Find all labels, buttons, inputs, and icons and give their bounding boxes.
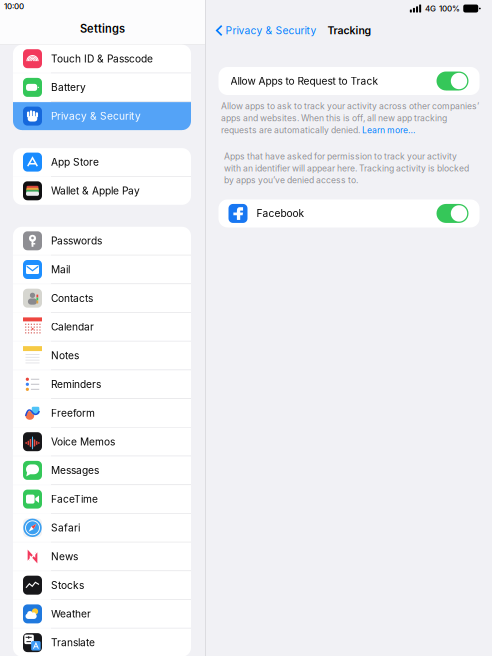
button[interactable]: Toggle: [436, 204, 468, 223]
staticText: Voice Memos: [51, 436, 115, 448]
staticText: Calendar: [51, 321, 94, 333]
button[interactable]: Voice Memos: [13, 428, 191, 456]
button[interactable]: Contacts: [13, 284, 191, 312]
button[interactable]: Touch ID & Passcode: [13, 45, 191, 73]
staticText: Freeform: [51, 407, 95, 419]
button[interactable]: Privacy & Security: [13, 102, 191, 130]
staticText: with an identifier will appear here. Tra…: [224, 163, 469, 173]
staticText: App Store: [51, 156, 99, 168]
button[interactable]: Wallet & Apple Pay: [13, 177, 191, 205]
staticText: Translate: [51, 636, 95, 649]
staticText: by apps you’ve denied access to.: [224, 175, 358, 185]
staticText: Passwords: [51, 235, 102, 247]
staticText: Wallet & Apple Pay: [51, 185, 140, 197]
staticText: Privacy & Security: [225, 24, 316, 37]
staticText: apps and websites. When this is off, all…: [221, 113, 447, 123]
button[interactable]: Safari: [13, 514, 191, 542]
button[interactable]: Learn more…: [362, 125, 415, 135]
staticText: FaceTime: [51, 493, 98, 505]
staticText: 100%: [439, 4, 460, 13]
button[interactable]: News: [13, 542, 191, 570]
button[interactable]: Weather: [13, 600, 191, 628]
staticText: Safari: [51, 522, 80, 534]
button[interactable]: Stocks: [13, 571, 191, 599]
staticText: Reminders: [51, 378, 101, 390]
staticText: 4G: [425, 4, 436, 13]
button[interactable]: Privacy & Security: [206, 17, 318, 44]
button[interactable]: Passwords: [13, 227, 191, 255]
staticText: Apps that have asked for permission to t…: [224, 151, 457, 162]
button[interactable]: Notes: [13, 342, 191, 370]
button[interactable]: Messages: [13, 456, 191, 484]
staticText: Tracking: [327, 24, 371, 37]
staticText: News: [51, 550, 78, 563]
staticText: Battery: [51, 81, 86, 94]
staticText: Contacts: [51, 292, 93, 304]
staticText: Notes: [51, 349, 79, 362]
staticText: Messages: [51, 464, 99, 477]
button[interactable]: Battery: [13, 73, 191, 101]
staticText: 10:00: [4, 1, 24, 11]
button[interactable]: App Store: [13, 148, 191, 176]
button[interactable]: Freeform: [13, 399, 191, 427]
staticText: Allow Apps to Request to Track: [230, 75, 378, 87]
button[interactable]: Reminders: [13, 370, 191, 398]
staticText: Allow apps to ask to track your activity…: [221, 101, 479, 111]
staticText: Learn more…: [362, 125, 415, 135]
button[interactable]: Calendar: [13, 313, 191, 341]
staticText: Weather: [51, 608, 91, 620]
staticText: Mail: [51, 263, 70, 276]
staticText: Facebook: [256, 207, 304, 220]
button[interactable]: Translate: [13, 629, 191, 656]
button[interactable]: FaceTime: [13, 485, 191, 513]
staticText: Stocks: [51, 579, 84, 591]
button[interactable]: Toggle: [436, 71, 468, 90]
staticText: Touch ID & Passcode: [51, 53, 153, 65]
button[interactable]: Mail: [13, 255, 191, 283]
staticText: Settings: [80, 22, 125, 35]
staticText: Privacy & Security: [51, 110, 141, 122]
staticText: requests are automatically denied.: [221, 125, 362, 135]
